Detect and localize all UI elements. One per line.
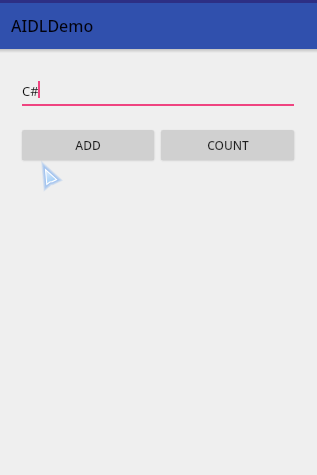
button[interactable]: C# (0, 78, 317, 106)
staticText: ADD (75, 137, 101, 153)
button[interactable]: COUNT (161, 130, 294, 160)
other: Pointer (43, 168, 67, 196)
staticText: C# (22, 82, 39, 100)
staticText: AIDLDemo (11, 15, 94, 37)
staticText: COUNT (207, 137, 249, 153)
button[interactable]: ADD (22, 130, 154, 160)
